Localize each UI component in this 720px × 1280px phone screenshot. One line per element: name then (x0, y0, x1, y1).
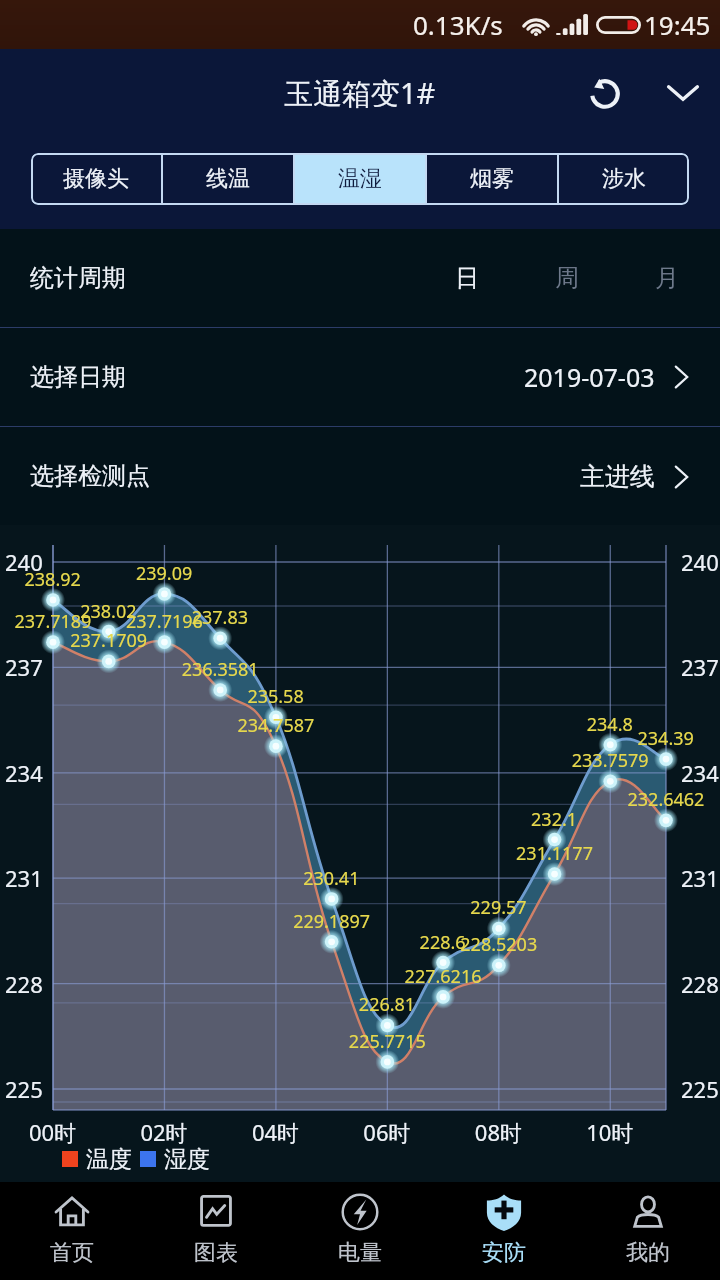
staticText: 选择日期 (30, 362, 126, 392)
button[interactable]: 选择日期 (0, 328, 720, 426)
staticText: 主进线 (580, 461, 655, 492)
button[interactable]: 温湿 (295, 153, 425, 205)
button[interactable]: 涉水 (559, 153, 689, 205)
button[interactable]: 周 (517, 229, 617, 327)
staticText: 线温 (206, 165, 250, 193)
staticText: 温湿 (338, 165, 382, 193)
staticText: 月 (655, 263, 679, 293)
staticText: 图表 (194, 1239, 238, 1267)
button[interactable]: 摄像头 (31, 153, 161, 205)
button[interactable]: Expand (654, 63, 712, 121)
button[interactable]: 选择检测点 (0, 427, 720, 525)
button[interactable]: Refresh (574, 61, 636, 123)
button[interactable]: 电量 (288, 1182, 432, 1280)
staticText: 玉通箱变1# (284, 73, 436, 113)
button[interactable]: 首页 (0, 1182, 144, 1280)
staticText: 安防 (482, 1239, 526, 1267)
button[interactable]: 日 (417, 229, 517, 327)
staticText: 0.13K/s (413, 7, 503, 42)
staticText: 19:45 (644, 7, 711, 42)
staticText: 烟雾 (470, 165, 514, 193)
button[interactable]: 我的 (576, 1182, 720, 1280)
staticText: 统计周期 (30, 263, 126, 293)
staticText: 涉水 (602, 165, 646, 193)
button[interactable]: 线温 (163, 153, 293, 205)
staticText: 电量 (338, 1239, 382, 1267)
staticText: 首页 (50, 1239, 94, 1267)
staticText: 日 (455, 263, 479, 293)
staticText: 摄像头 (63, 165, 129, 193)
staticText: 我的 (626, 1239, 670, 1267)
button[interactable]: 烟雾 (427, 153, 557, 205)
button[interactable]: 图表 (144, 1182, 288, 1280)
staticText: 周 (555, 263, 579, 293)
staticText: 选择检测点 (30, 461, 150, 491)
button[interactable]: 安防 (432, 1182, 576, 1280)
staticText: 2019-07-03 (524, 360, 655, 394)
button[interactable]: 月 (617, 229, 717, 327)
